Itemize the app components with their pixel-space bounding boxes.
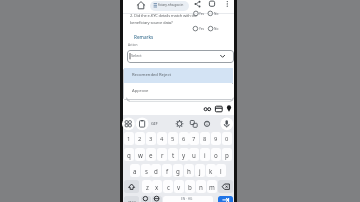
staticText: n	[199, 183, 203, 191]
staticText: x	[155, 183, 159, 191]
button[interactable]: 8	[200, 132, 210, 145]
button[interactable]	[218, 196, 233, 202]
button[interactable]: 4	[157, 132, 167, 145]
button[interactable]: b	[185, 180, 195, 193]
staticText: a	[133, 167, 137, 175]
staticText: v	[177, 183, 181, 191]
staticText: q	[127, 151, 131, 159]
button[interactable]	[218, 180, 233, 193]
staticText: 9	[214, 135, 218, 143]
staticText: g	[176, 167, 180, 175]
button[interactable]: e	[146, 148, 156, 161]
button[interactable]: k	[206, 164, 216, 177]
staticText: 0	[225, 135, 229, 143]
button[interactable]: 7	[189, 132, 199, 145]
staticText: Recomended Reject	[132, 72, 171, 78]
staticText: p	[225, 151, 229, 159]
button[interactable]: ?123	[124, 196, 139, 202]
staticText: EN · HG	[181, 197, 193, 201]
staticText: k	[209, 167, 213, 175]
staticText: 7	[192, 135, 196, 143]
button[interactable]: 1	[124, 132, 134, 145]
button[interactable]	[124, 84, 233, 99]
button[interactable]: 6	[179, 132, 189, 145]
button[interactable]	[141, 196, 151, 202]
staticText: i	[204, 151, 206, 159]
staticText: f	[166, 167, 169, 175]
staticText: Yes	[199, 12, 204, 16]
staticText: y	[182, 151, 186, 159]
button[interactable]: i	[200, 148, 210, 161]
button[interactable]: h	[184, 164, 194, 177]
button[interactable]: 0	[222, 132, 232, 145]
button[interactable]: s	[141, 164, 151, 177]
button[interactable]	[124, 68, 233, 83]
staticText: Select	[131, 53, 142, 58]
staticText: s	[145, 167, 148, 175]
button[interactable]: o	[211, 148, 221, 161]
button[interactable]: 5	[168, 132, 178, 145]
staticText: z	[146, 183, 149, 191]
button[interactable]: t	[168, 148, 178, 161]
button[interactable]: m	[207, 180, 217, 193]
staticText: t	[172, 151, 175, 159]
staticText: c	[167, 183, 170, 191]
button[interactable]: 3	[146, 132, 156, 145]
button[interactable]: p	[222, 148, 232, 161]
button[interactable]: j	[195, 164, 205, 177]
button[interactable]: 9	[211, 132, 221, 145]
button[interactable]: a	[130, 164, 140, 177]
staticText: l	[220, 167, 222, 175]
staticText: m	[209, 183, 215, 191]
staticText: ficiary.nha.gov.in	[158, 2, 184, 7]
staticText: 2. Did the e-KYC details match with the	[130, 13, 198, 19]
staticText: 4	[160, 135, 164, 143]
button[interactable]: q	[124, 148, 134, 161]
staticText: h	[187, 167, 191, 175]
button[interactable]: g	[173, 164, 183, 177]
staticText: 5	[171, 135, 175, 143]
button[interactable]: w	[135, 148, 145, 161]
staticText: 6	[182, 135, 186, 143]
staticText: Yes	[199, 27, 204, 31]
staticText: d	[154, 167, 158, 175]
staticText: b	[188, 183, 192, 191]
staticText: ?123	[128, 200, 136, 202]
staticText: Approve	[132, 88, 149, 94]
staticText: 8	[203, 135, 207, 143]
staticText: u	[192, 151, 196, 159]
staticText: Action	[128, 43, 138, 47]
staticText: o	[214, 151, 218, 159]
button[interactable]: z	[142, 180, 152, 193]
button[interactable]: n	[196, 180, 206, 193]
staticText: j	[199, 167, 201, 175]
button[interactable]: l	[216, 164, 226, 177]
button[interactable]: f	[162, 164, 172, 177]
staticText: Remarks	[134, 34, 154, 40]
staticText: beneficiary source data?	[130, 20, 173, 26]
button[interactable]: d	[151, 164, 161, 177]
button[interactable]	[152, 196, 162, 202]
staticText: w	[138, 151, 143, 159]
staticText: 2	[138, 135, 142, 143]
staticText: No	[214, 27, 219, 31]
button[interactable]: r	[157, 148, 167, 161]
button[interactable]: 2	[135, 132, 145, 145]
button[interactable]: c	[163, 180, 173, 193]
staticText: e	[149, 151, 153, 159]
staticText: GIF	[151, 121, 158, 127]
staticText: 3	[149, 135, 153, 143]
button[interactable]: x	[152, 180, 162, 193]
button[interactable]: u	[189, 148, 199, 161]
staticText: No	[214, 12, 219, 16]
button[interactable]	[124, 180, 139, 193]
button[interactable]: y	[179, 148, 189, 161]
button[interactable]	[150, 1, 189, 11]
button[interactable]: v	[174, 180, 184, 193]
staticText: r	[161, 151, 164, 159]
button[interactable]	[127, 50, 234, 63]
button[interactable]	[163, 196, 213, 202]
staticText: 1	[127, 135, 131, 143]
